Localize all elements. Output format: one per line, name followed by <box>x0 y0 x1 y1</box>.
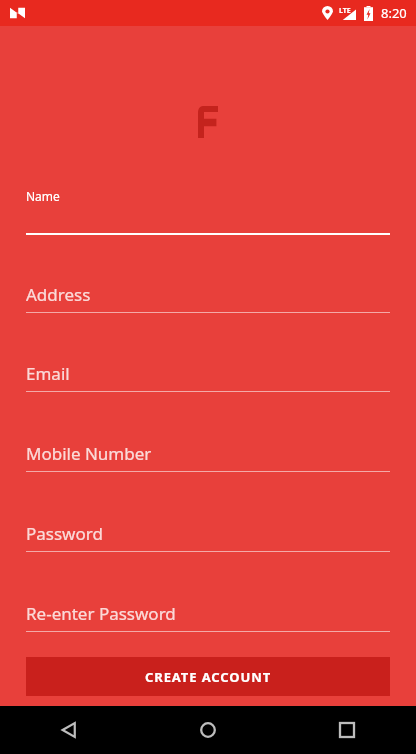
staticText: LTE <box>339 6 351 16</box>
staticText: Name <box>26 188 60 204</box>
button[interactable]: Password <box>26 522 390 552</box>
staticText: 8:20 <box>381 4 407 22</box>
staticText: Password <box>26 522 103 545</box>
staticText: Email <box>26 362 70 385</box>
button[interactable]: Address <box>26 283 390 313</box>
staticText: Address <box>26 283 91 306</box>
button[interactable]: Name <box>26 188 390 235</box>
staticText: CREATE ACCOUNT <box>145 668 272 686</box>
staticText: Mobile Number <box>26 442 152 465</box>
button[interactable]: Recents <box>323 706 371 754</box>
button[interactable]: Back <box>45 706 93 754</box>
staticText: Re-enter Password <box>26 602 176 625</box>
button[interactable]: Re-enter Password <box>26 602 390 632</box>
button[interactable]: CREATE ACCOUNT <box>26 657 390 696</box>
button[interactable]: Home <box>184 706 232 754</box>
button[interactable]: Mobile Number <box>26 442 390 472</box>
button[interactable]: Email <box>26 362 390 392</box>
